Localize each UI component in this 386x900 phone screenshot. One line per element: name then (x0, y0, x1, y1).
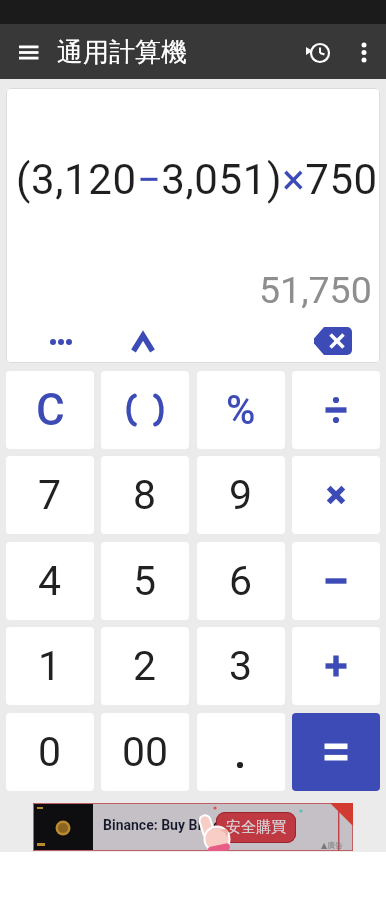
staticText: 1 (38, 642, 62, 690)
button[interactable]: 9 (197, 456, 285, 534)
button[interactable]: 8 (101, 456, 189, 534)
button[interactable]: % (197, 371, 285, 449)
staticText: 8 (133, 471, 157, 519)
staticText: Binance: Buy Bitcoi (103, 817, 225, 833)
staticText: 0 (38, 728, 62, 776)
button[interactable]: 4 (6, 542, 94, 620)
staticText: ▲廣告 (321, 840, 344, 850)
staticText: 3 (229, 642, 253, 690)
staticText: (3,120−3,051)×750 (16, 155, 378, 204)
button[interactable] (10, 28, 50, 76)
button[interactable]: 6 (197, 542, 285, 620)
staticText: 安全購買 (226, 818, 286, 837)
button[interactable]: Binance: Buy Bitcoi (33, 803, 353, 851)
button[interactable] (292, 456, 380, 534)
staticText: 2 (133, 642, 157, 690)
button[interactable]: 2 (101, 627, 189, 705)
button[interactable]: 00 (101, 713, 189, 791)
button[interactable]: 5 (101, 542, 189, 620)
staticText: 51,750 (259, 268, 372, 312)
button[interactable] (292, 542, 380, 620)
button[interactable] (292, 371, 380, 449)
button[interactable] (292, 713, 380, 791)
button[interactable] (300, 32, 340, 72)
button[interactable]: 0 (6, 713, 94, 791)
button[interactable] (118, 320, 168, 360)
staticText: C (36, 384, 65, 436)
button[interactable] (31, 322, 101, 362)
staticText: 5 (133, 557, 157, 605)
staticText: 4 (38, 557, 62, 605)
button[interactable]: 3 (197, 627, 285, 705)
button[interactable]: C (6, 371, 94, 449)
button[interactable]: 7 (6, 456, 94, 534)
button[interactable]: 安全購買 (216, 812, 296, 843)
button[interactable] (101, 371, 189, 449)
button[interactable]: 1 (6, 627, 94, 705)
staticText: 7 (38, 471, 62, 519)
button[interactable] (292, 627, 380, 705)
staticText: 9 (229, 471, 253, 519)
button[interactable] (346, 32, 382, 72)
staticText: % (226, 387, 256, 434)
button[interactable] (301, 316, 371, 360)
staticText: 00 (122, 728, 169, 776)
staticText: 通用計算機 (57, 36, 187, 69)
button[interactable] (197, 713, 285, 791)
staticText: 6 (229, 557, 253, 605)
